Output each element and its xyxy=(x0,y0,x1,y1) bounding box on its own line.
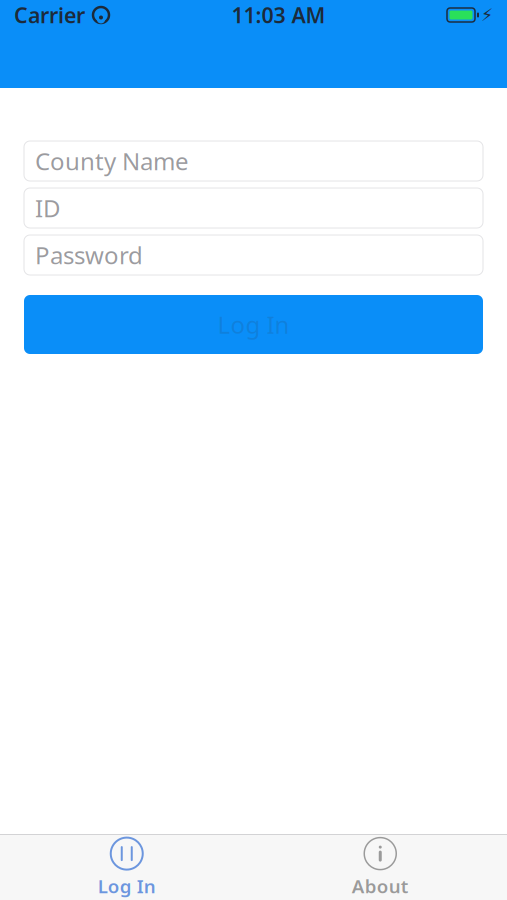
staticText: Password xyxy=(35,239,143,271)
button[interactable]: Log In xyxy=(0,835,253,900)
staticText: ⚡︎ xyxy=(481,5,493,25)
staticText: County Name xyxy=(35,145,189,177)
button[interactable]: About xyxy=(253,835,507,900)
staticText: Log In xyxy=(217,309,289,340)
staticText: Carrier xyxy=(14,1,85,29)
button[interactable]: Log In xyxy=(24,295,483,354)
button[interactable]: Password xyxy=(24,235,483,275)
staticText: About xyxy=(352,874,409,898)
button[interactable]: ID xyxy=(24,188,483,228)
button[interactable]: County Name xyxy=(24,141,483,181)
staticText: 11:03 AM xyxy=(231,1,325,29)
staticText: Log In xyxy=(98,874,156,898)
staticText: ID xyxy=(35,192,61,224)
